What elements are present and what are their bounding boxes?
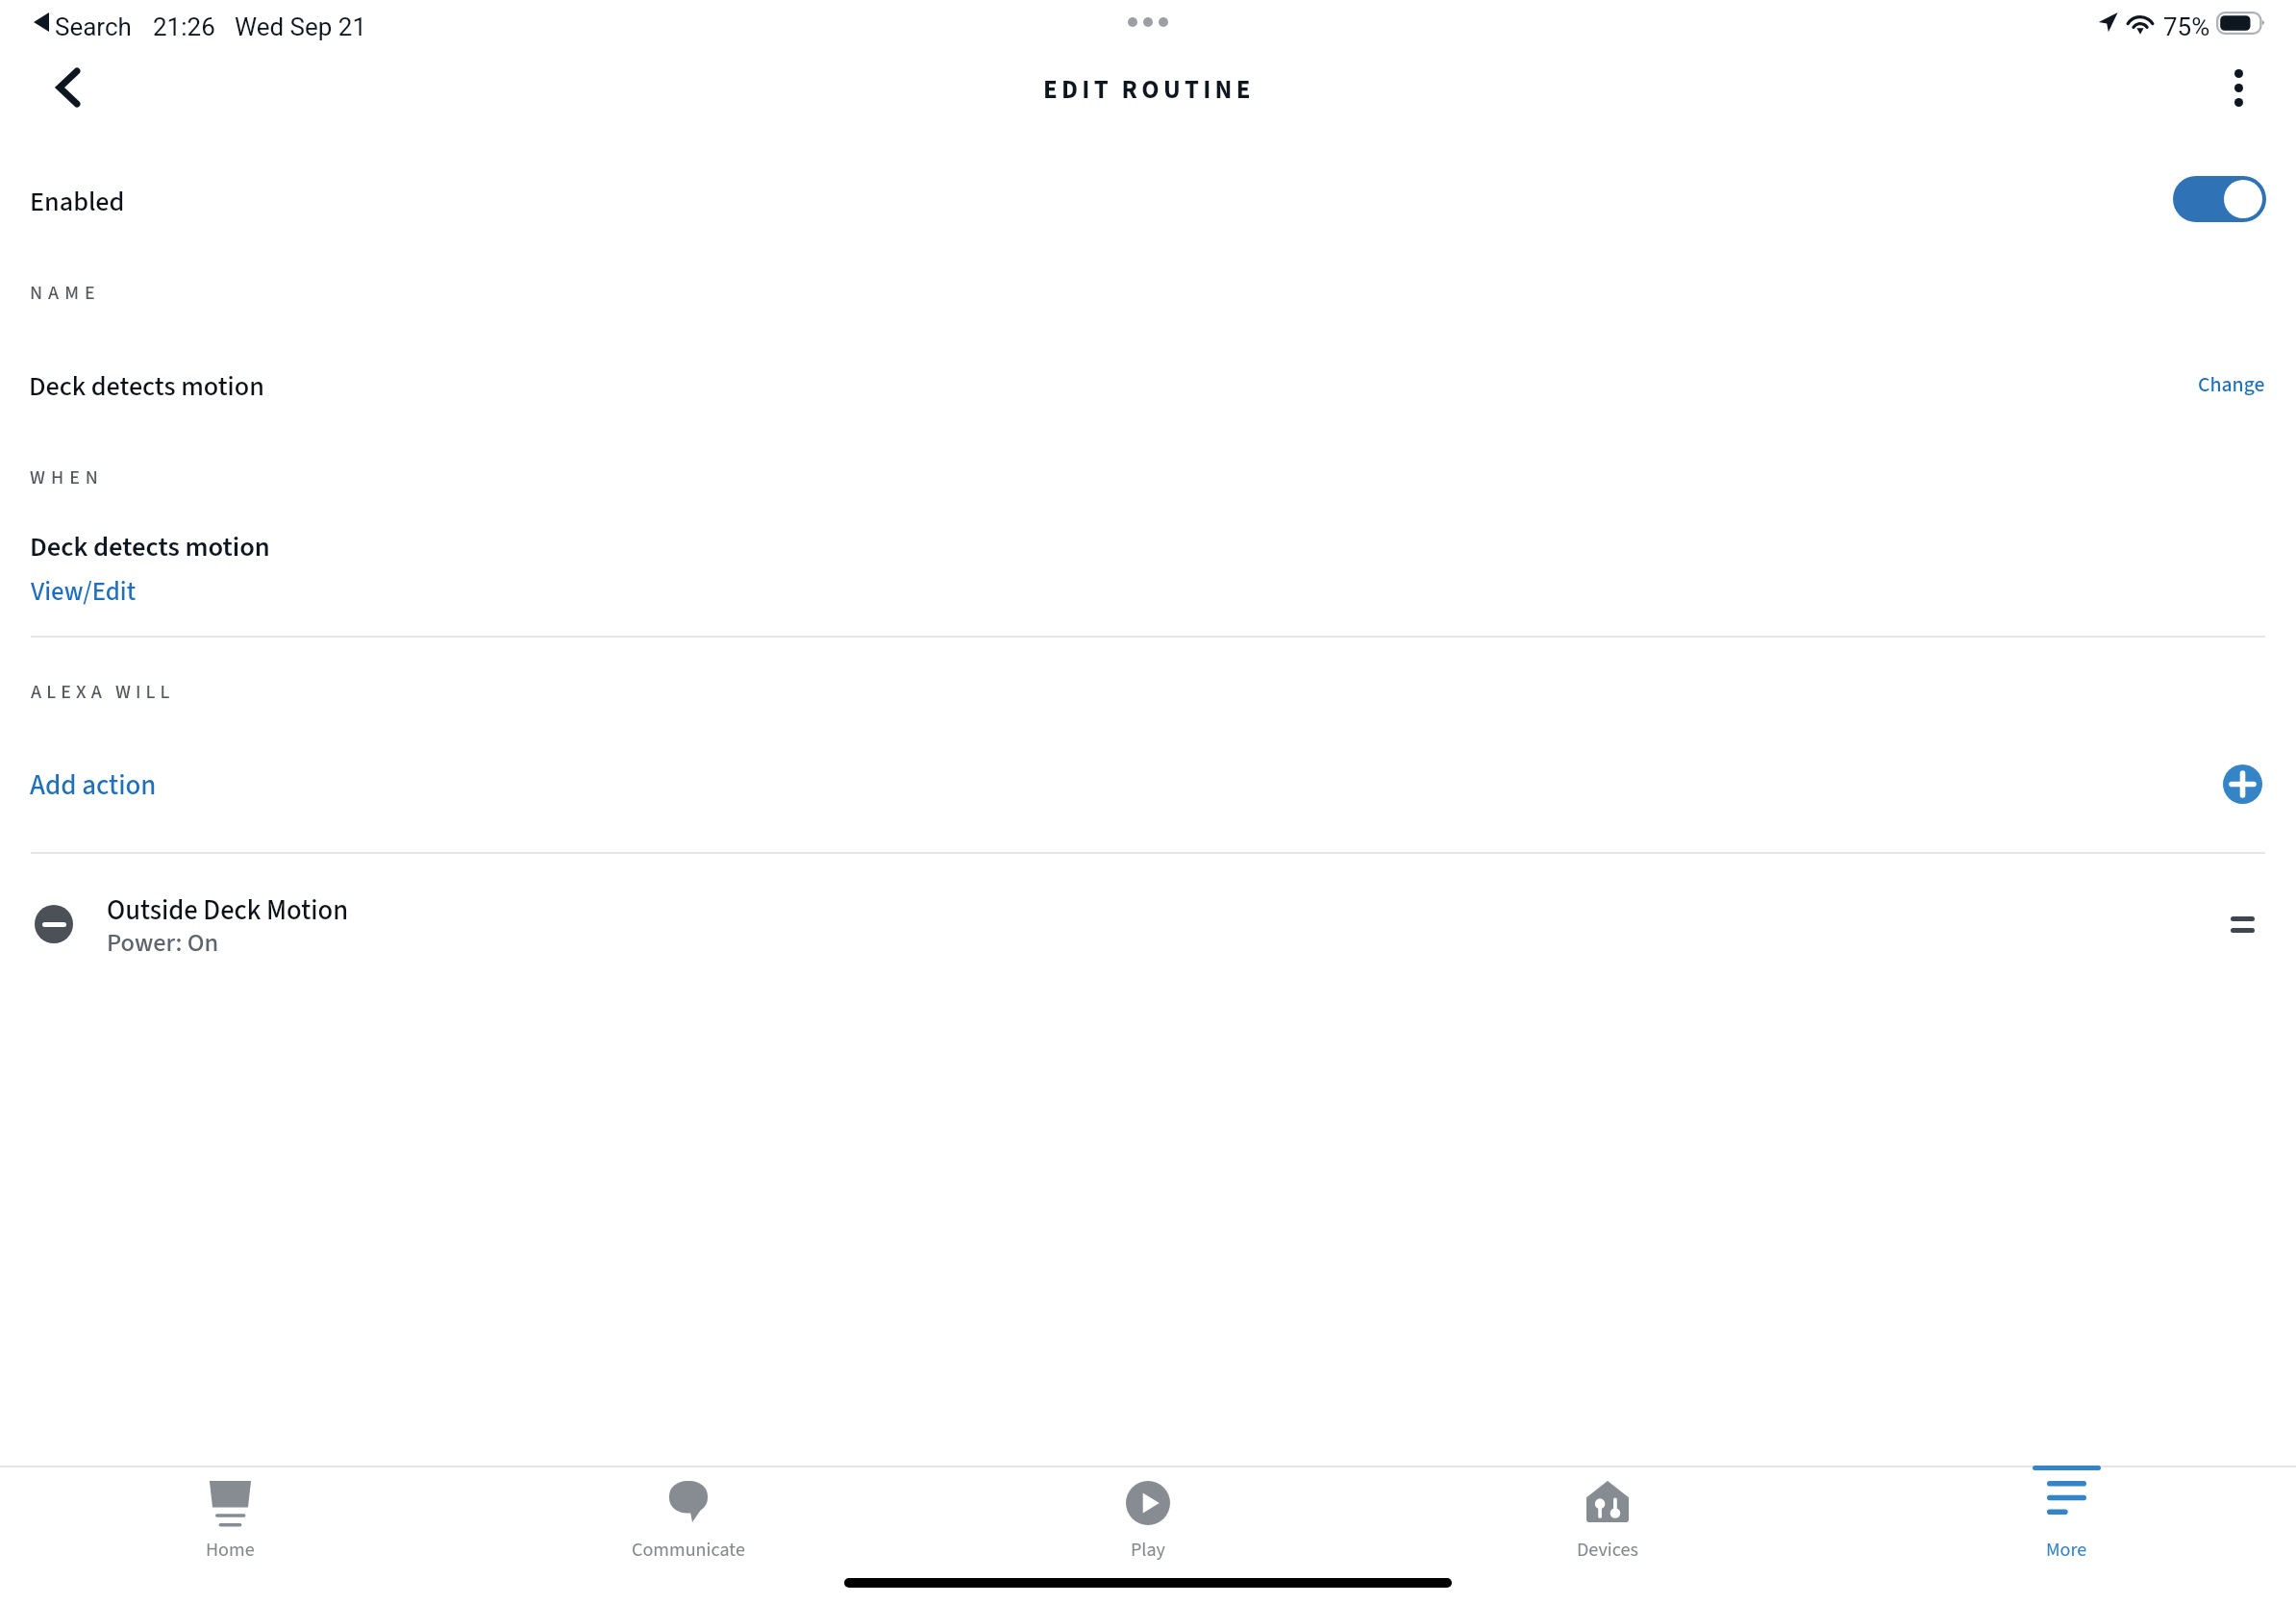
- staticText: Devices: [1577, 1536, 1638, 1564]
- staticText: Search: [55, 13, 132, 41]
- button[interactable]: Add action: [29, 767, 158, 802]
- staticText: More: [2046, 1536, 2087, 1564]
- staticText: 75%: [2163, 13, 2210, 41]
- staticText: Change: [2198, 370, 2265, 400]
- staticText: Power: On: [107, 925, 219, 962]
- staticText: View/Edit: [31, 573, 137, 606]
- staticText: Enabled: [30, 183, 125, 221]
- button[interactable]: Change: [2190, 365, 2271, 408]
- button[interactable]: View/Edit: [29, 574, 137, 607]
- staticText: Communicate: [632, 1536, 745, 1564]
- staticText: 21:26: [153, 13, 215, 41]
- staticText: ALEXA WILL: [31, 678, 175, 706]
- button[interactable]: Back: [41, 61, 95, 114]
- button[interactable]: Add action: [2223, 764, 2262, 804]
- button[interactable]: Communicate: [460, 1467, 917, 1564]
- button[interactable]: Home: [1, 1467, 459, 1564]
- staticText: Play: [1131, 1536, 1166, 1564]
- staticText: EDIT ROUTINE: [1043, 72, 1255, 109]
- button[interactable]: More: [1837, 1467, 2295, 1564]
- staticText: Deck detects motion: [30, 528, 270, 567]
- button[interactable]: Remove action: [0, 861, 2296, 986]
- staticText: Add action: [30, 765, 157, 800]
- button[interactable]: Enabled: [0, 149, 2296, 250]
- button[interactable]: Enabled: [2173, 176, 2266, 222]
- staticText: Home: [206, 1536, 255, 1564]
- staticText: Deck detects motion: [29, 367, 264, 406]
- staticText: NAME: [30, 279, 101, 307]
- staticText: Outside Deck Motion: [107, 891, 349, 931]
- button[interactable]: Devices: [1379, 1467, 1836, 1564]
- button[interactable]: Play: [919, 1467, 1377, 1564]
- staticText: Wed Sep 21: [235, 13, 367, 41]
- staticText: WHEN: [30, 464, 104, 491]
- button[interactable]: Reorder action: [2217, 899, 2267, 949]
- button[interactable]: More options: [2211, 61, 2265, 114]
- button[interactable]: Remove action: [35, 905, 73, 943]
